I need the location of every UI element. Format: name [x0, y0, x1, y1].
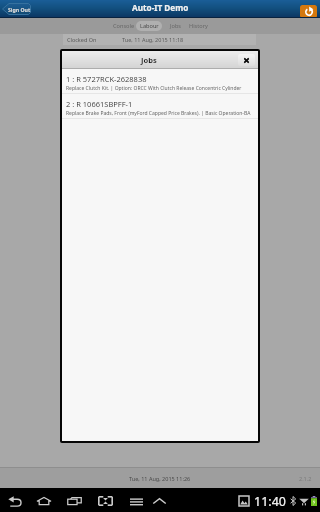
button[interactable]: Labour [136, 21, 162, 31]
button[interactable]: Menu [126, 491, 147, 511]
staticText: Tue, 11 Aug, 2015 11:26 [129, 475, 191, 482]
button[interactable]: Close [238, 54, 255, 66]
button[interactable]: Recents [63, 491, 86, 511]
button[interactable]: Back [4, 491, 27, 511]
staticText: 2 : R 10661SBPFF-1 [66, 99, 133, 109]
staticText: History [189, 22, 208, 30]
staticText: Jobs [141, 55, 157, 65]
button[interactable]: History [186, 21, 210, 31]
staticText: Sign Out [8, 6, 31, 13]
button[interactable]: Expand [149, 491, 170, 511]
staticText: Tue, 11 Aug, 2015 11:18 [122, 36, 184, 43]
staticText: 2.1.2 [299, 475, 312, 482]
staticText: Labour [140, 22, 159, 30]
button[interactable]: Refresh [300, 5, 317, 18]
staticText: Console [113, 22, 135, 30]
staticText: Jobs [170, 22, 182, 30]
button[interactable]: Jobs [164, 21, 187, 31]
staticText: 1 : R 5727RCK-2628838 [66, 74, 147, 84]
button[interactable]: Sign Out [2, 3, 31, 15]
staticText: Replace Clutch Kit. | Option: ORCC With … [66, 85, 242, 92]
button[interactable]: Console [108, 21, 140, 31]
staticText: Auto-IT Demo [132, 2, 189, 13]
staticText: Clocked On [67, 36, 97, 43]
staticText: Replace Brake Pads, Front (myFord Capped… [66, 110, 251, 117]
staticText: 11:40 [254, 493, 286, 510]
button[interactable]: Home [32, 491, 56, 511]
button[interactable]: 1 : R 5727RCK-2628838 [62, 69, 258, 93]
button[interactable]: Screenshot [94, 491, 117, 511]
button[interactable]: 2 : R 10661SBPFF-1 [62, 94, 258, 118]
